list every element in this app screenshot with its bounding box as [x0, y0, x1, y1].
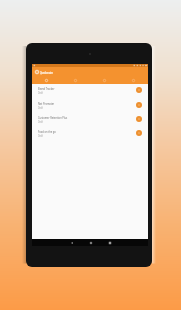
- button[interactable]: Home: [88, 240, 93, 245]
- button[interactable]: Tab 1: [32, 77, 61, 84]
- button[interactable]: Back: [69, 240, 74, 245]
- button[interactable]: Open survey: [136, 102, 142, 108]
- button[interactable]: Net Promoter: [32, 98, 148, 112]
- button[interactable]: Brand Tracker: [32, 83, 148, 97]
- button[interactable]: Tab 3: [90, 77, 119, 84]
- button[interactable]: Recent apps: [107, 240, 112, 245]
- button[interactable]: Tab 4: [119, 77, 148, 84]
- button[interactable]: Open survey: [136, 87, 142, 93]
- staticText: Draft: [38, 120, 43, 124]
- button[interactable]: Open survey: [136, 116, 142, 122]
- staticText: Brand Tracker: [38, 86, 55, 91]
- button[interactable]: Customer Retention Plus: [32, 112, 148, 126]
- staticText: Net Promoter: [38, 101, 54, 106]
- button[interactable]: Open survey: [136, 130, 142, 136]
- staticText: Draft: [38, 91, 43, 95]
- staticText: Questionnaire: [40, 70, 53, 75]
- staticText: Draft: [38, 106, 43, 110]
- staticText: Food on the go: [38, 129, 56, 134]
- staticText: Customer Retention Plus: [38, 115, 68, 120]
- button[interactable]: Tab 2: [61, 77, 90, 84]
- staticText: Draft: [38, 134, 43, 138]
- button[interactable]: Food on the go: [32, 126, 148, 140]
- button[interactable]: App logo: [35, 70, 39, 74]
